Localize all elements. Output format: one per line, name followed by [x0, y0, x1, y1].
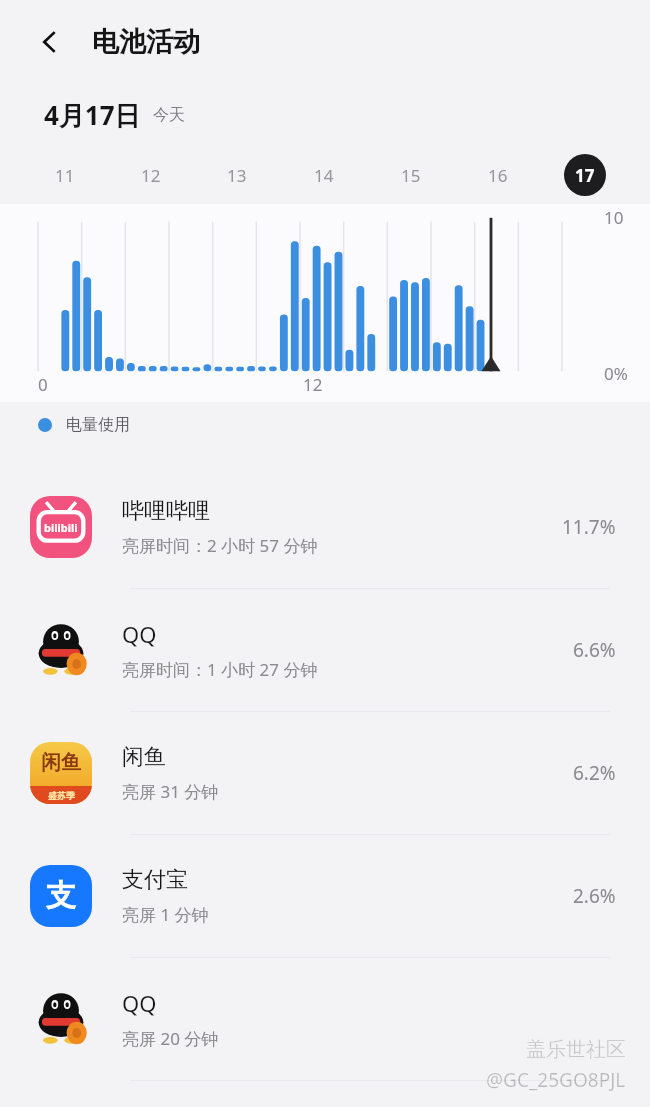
staticText: 17 [575, 164, 595, 187]
staticText: 13 [227, 164, 247, 187]
staticText: bilibili [44, 520, 78, 535]
staticText: QQ [122, 988, 157, 1018]
staticText: 11 [55, 164, 75, 187]
button[interactable]: QQ [0, 958, 650, 1080]
staticText: 亮屏 20 分钟 [122, 1027, 219, 1050]
button[interactable]: bilibili [0, 466, 650, 588]
button[interactable]: Back [26, 18, 74, 66]
staticText: 电量使用 [66, 415, 130, 435]
staticText: 14 [314, 164, 334, 187]
staticText: 12 [141, 164, 161, 187]
button[interactable]: 11 [22, 146, 108, 204]
staticText: 支付宝 [122, 866, 188, 894]
staticText: @GC_25GO8PJL [486, 1067, 626, 1093]
button[interactable]: 15 [367, 146, 454, 204]
staticText: 亮屏 31 分钟 [122, 780, 219, 803]
staticText: 亮屏时间：1 小时 27 分钟 [122, 658, 318, 681]
button[interactable]: 13 [194, 146, 280, 204]
staticText: 闲鱼 [41, 750, 81, 775]
staticText: 支 [46, 877, 76, 915]
staticText: 闲鱼 [122, 743, 166, 771]
button[interactable]: 14 [280, 146, 367, 204]
staticText: 盛苏季 [48, 790, 75, 801]
staticText: 6.6% [573, 637, 616, 663]
button[interactable]: 盛苏季 [0, 712, 650, 834]
button[interactable]: 12 [108, 146, 194, 204]
staticText: 6.2% [573, 760, 616, 786]
staticText: 15 [401, 164, 421, 187]
button[interactable]: 16 [454, 146, 541, 204]
staticText: 2.6% [573, 883, 616, 909]
staticText: 4月17日 [44, 97, 141, 133]
staticText: 10 [604, 206, 624, 229]
staticText: 今天 [153, 105, 185, 125]
staticText: 亮屏 1 分钟 [122, 903, 209, 926]
staticText: 亮屏时间：2 小时 57 分钟 [122, 534, 318, 557]
staticText: 0% [604, 362, 628, 385]
staticText: 16 [488, 164, 508, 187]
staticText: 0 [38, 373, 48, 396]
button[interactable]: 支 [0, 835, 650, 957]
staticText: 12 [303, 373, 323, 396]
staticText: 哔哩哔哩 [122, 497, 210, 525]
button[interactable]: QQ [0, 589, 650, 711]
staticText: QQ [122, 619, 157, 649]
staticText: 电池活动 [92, 25, 200, 59]
button[interactable]: 17 [541, 146, 628, 204]
staticText: 盖乐世社区 [526, 1037, 626, 1062]
staticText: 11.7% [562, 514, 616, 540]
